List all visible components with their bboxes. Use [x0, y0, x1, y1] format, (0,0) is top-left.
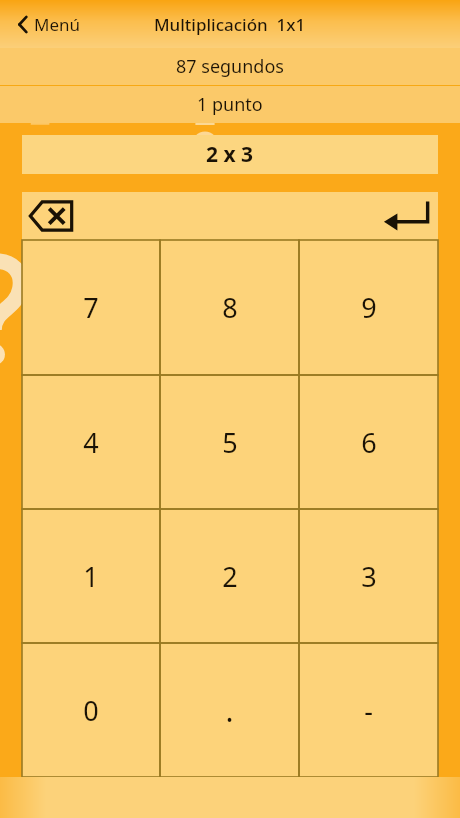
- button[interactable]: 1: [22, 509, 160, 643]
- staticText: 9: [361, 289, 377, 326]
- staticText: 4: [83, 424, 99, 461]
- staticText: 87 segundos: [176, 54, 284, 79]
- staticText: 6: [361, 424, 377, 461]
- staticText: 2: [222, 558, 238, 595]
- button[interactable]: 6: [299, 375, 438, 509]
- button[interactable]: .: [160, 643, 299, 777]
- staticText: 2 x 3: [206, 140, 254, 169]
- staticText: 7: [83, 289, 99, 326]
- button[interactable]: 3: [299, 509, 438, 643]
- button[interactable]: 2 x 3: [22, 135, 438, 174]
- staticText: 1: [83, 558, 99, 595]
- button[interactable]: 5: [160, 375, 299, 509]
- button[interactable]: Borrar: [22, 193, 80, 239]
- staticText: 8: [222, 289, 238, 326]
- button[interactable]: 4: [22, 375, 160, 509]
- staticText: 1 punto: [197, 92, 263, 117]
- button[interactable]: 9: [299, 240, 438, 375]
- staticText: 3: [361, 558, 377, 595]
- button[interactable]: 2: [160, 509, 299, 643]
- button[interactable]: -: [299, 643, 438, 777]
- button[interactable]: Menú: [12, 7, 85, 42]
- staticText: 0: [83, 692, 99, 729]
- staticText: -: [364, 692, 373, 729]
- button[interactable]: 0: [22, 643, 160, 777]
- button[interactable]: 87 segundos: [0, 48, 460, 85]
- button[interactable]: 8: [160, 240, 299, 375]
- staticText: 5: [222, 424, 238, 461]
- button[interactable]: 1 punto: [0, 86, 460, 123]
- button[interactable]: 7: [22, 240, 160, 375]
- button[interactable]: Intro: [376, 193, 438, 239]
- staticText: Multiplicación 1x1: [154, 13, 306, 36]
- staticText: Menú: [34, 13, 81, 36]
- staticText: .: [225, 690, 234, 731]
